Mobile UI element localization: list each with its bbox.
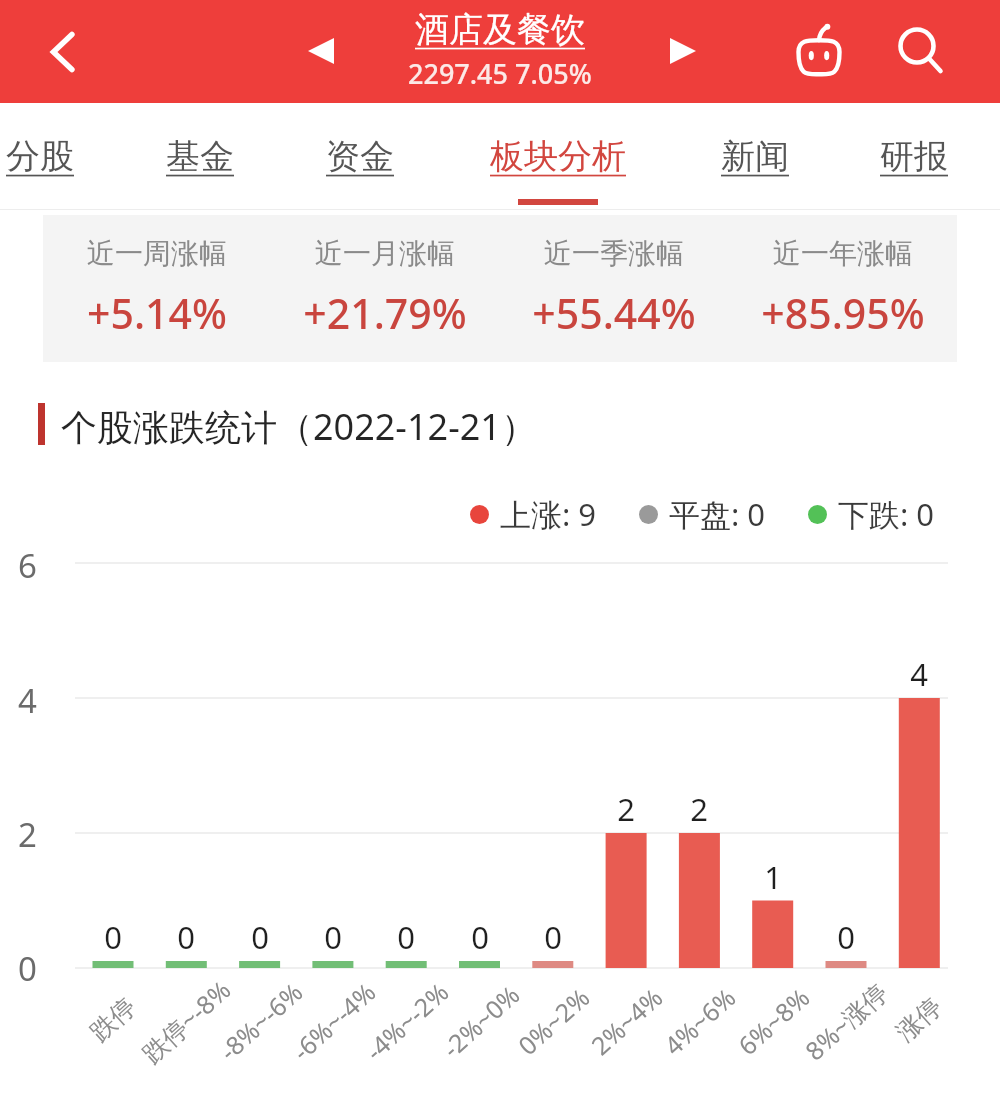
button[interactable]: 近一周涨幅	[43, 215, 957, 362]
staticText: 0	[177, 916, 195, 958]
staticText: 1	[764, 856, 782, 898]
staticText: -6%~-4%	[285, 975, 382, 1067]
staticText: 2	[617, 788, 635, 830]
staticText: 4	[18, 678, 37, 723]
staticText: -8%~-6%	[212, 975, 309, 1067]
staticText: 新闻	[721, 135, 789, 178]
button[interactable]: 上涨: 9	[470, 493, 597, 535]
staticText: 跌停	[84, 991, 142, 1048]
staticText: 0	[837, 916, 855, 958]
button[interactable]: Back	[28, 16, 100, 88]
staticText: 6	[18, 543, 37, 588]
button[interactable]: 研报	[876, 103, 952, 210]
staticText: 6%~8%	[730, 980, 816, 1062]
button[interactable]: Next sector	[652, 20, 714, 82]
staticText: 4	[910, 653, 928, 695]
staticText: 0	[324, 916, 342, 958]
staticText: 近一季涨幅	[544, 236, 684, 271]
staticText: +85.95%	[761, 285, 925, 341]
staticText: +21.79%	[303, 285, 467, 341]
staticText: 研报	[880, 135, 948, 178]
staticText: -2%~0%	[435, 977, 526, 1065]
staticText: 上涨: 9	[500, 493, 597, 535]
staticText: 0	[104, 916, 122, 958]
staticText: 下跌: 0	[838, 493, 935, 535]
staticText: 板块分析	[490, 135, 626, 178]
staticText: 个股涨跌统计（2022-12-21）	[61, 402, 537, 446]
button[interactable]: 资金	[322, 103, 398, 210]
staticText: +55.44%	[532, 285, 696, 341]
staticText: 平盘: 0	[669, 493, 766, 535]
staticText: 酒店及餐饮	[415, 8, 585, 51]
button[interactable]: Previous sector	[290, 20, 352, 82]
button[interactable]: 分股	[2, 103, 78, 210]
button[interactable]: 酒店及餐饮	[0, 8, 1000, 92]
button[interactable]: 板块分析	[482, 103, 634, 210]
staticText: 资金	[326, 135, 394, 178]
staticText: 跌停~-8%	[134, 972, 237, 1070]
staticText: 8%~涨停	[797, 975, 895, 1067]
staticText: 近一月涨幅	[315, 236, 455, 271]
staticText: 0	[544, 916, 562, 958]
staticText: 涨停	[890, 991, 948, 1048]
button[interactable]: AI assistant	[780, 12, 858, 90]
button[interactable]: 平盘: 0	[639, 493, 766, 535]
button[interactable]: 下跌: 0	[808, 493, 935, 535]
staticText: 基金	[166, 135, 234, 178]
staticText: 2	[690, 788, 708, 830]
button[interactable]: 基金	[162, 103, 238, 210]
staticText: 近一年涨幅	[773, 236, 913, 271]
staticText: +5.14%	[87, 285, 227, 341]
button[interactable]: Search	[884, 14, 958, 88]
staticText: 0	[251, 916, 269, 958]
staticText: 2%~4%	[583, 980, 669, 1062]
staticText: 4%~6%	[656, 980, 742, 1062]
staticText: 分股	[6, 135, 74, 178]
staticText: 近一周涨幅	[87, 236, 227, 271]
staticText: 0	[397, 916, 415, 958]
button[interactable]: 新闻	[717, 103, 793, 210]
staticText: 2	[18, 812, 37, 857]
staticText: 0	[471, 916, 489, 958]
staticText: 0%~2%	[510, 980, 596, 1062]
staticText: -4%~-2%	[358, 975, 455, 1067]
staticText: 0	[18, 946, 37, 991]
staticText: 2297.45 7.05%	[408, 55, 592, 92]
